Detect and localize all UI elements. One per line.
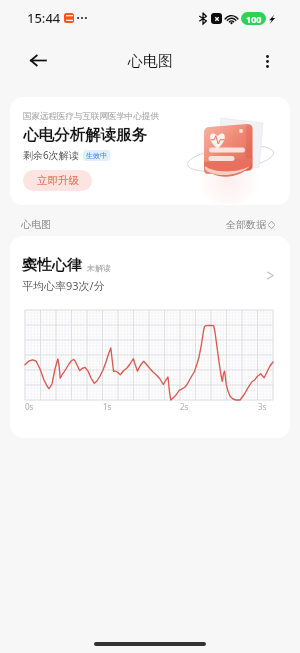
staticText: 全部数据 (226, 218, 266, 231)
staticText: 1s (103, 401, 112, 412)
staticText: 国家远程医疗与互联网医学中心提供 (23, 111, 159, 122)
staticText: 窦性心律 (22, 256, 82, 275)
staticText: 心电分析解读服务 (23, 125, 147, 145)
staticText: 15:44 (27, 9, 61, 27)
button[interactable]: 国家远程医疗与互联网医学中心提供 (10, 97, 290, 205)
staticText: 100 (246, 13, 262, 25)
staticText: 3s (258, 401, 267, 412)
staticText: 生效中 (86, 151, 107, 160)
staticText: 平均心率93次/分 (22, 278, 105, 293)
staticText: 立即升级 (37, 174, 79, 187)
button[interactable]: Back (18, 41, 58, 81)
button[interactable]: 立即升级 (23, 170, 92, 191)
staticText: 剩余6次解读 (23, 148, 79, 162)
staticText: 0s (25, 401, 34, 412)
staticText: 心电图 (21, 218, 51, 231)
button[interactable]: 全部数据 (226, 218, 275, 231)
staticText: 心电图 (128, 52, 173, 71)
button[interactable]: More options (247, 41, 287, 81)
staticText: 未解读 (87, 263, 111, 273)
staticText: 2s (180, 401, 189, 412)
button[interactable]: 窦性心律 (10, 236, 290, 438)
